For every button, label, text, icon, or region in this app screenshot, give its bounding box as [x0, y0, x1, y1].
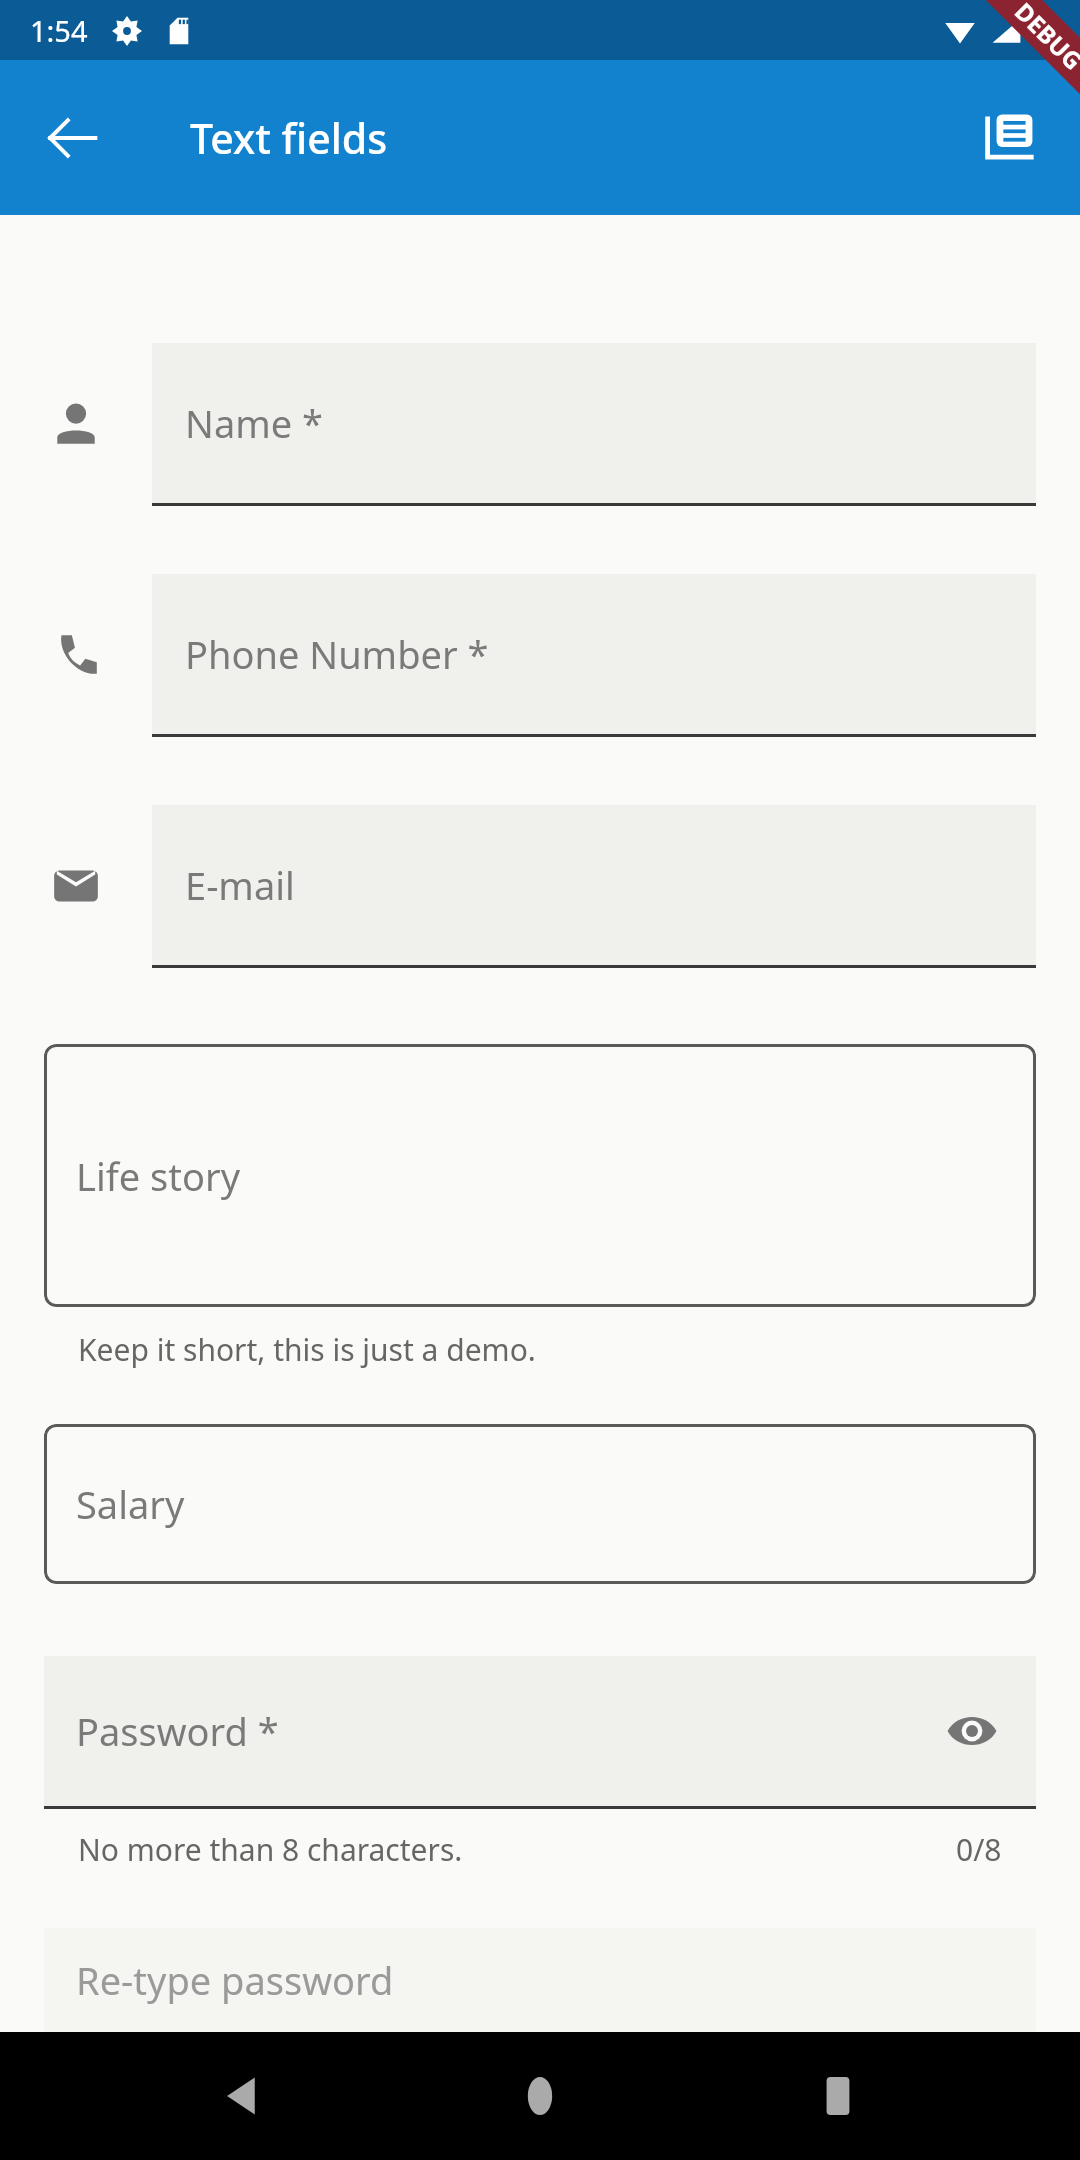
staticText: 1:54 [30, 11, 88, 50]
staticText: Salary [76, 1478, 185, 1530]
staticText: Phone Number * [185, 628, 489, 680]
staticText: Life story [76, 1150, 241, 1202]
button[interactable]: Back [24, 90, 120, 186]
button[interactable]: Salary [44, 1424, 1036, 1584]
staticText: Name * [185, 397, 323, 449]
button[interactable]: Re-type password [44, 1928, 1036, 2032]
staticText: 0/8 [956, 1829, 1002, 1870]
staticText: Password * [76, 1705, 279, 1757]
staticText: DEBUG [1008, 0, 1080, 77]
staticText: Keep it short, this is just a demo. [78, 1329, 536, 1370]
staticText: Re-type password [76, 1954, 394, 2006]
button[interactable]: Name * [0, 343, 1080, 506]
button[interactable]: Show password [932, 1691, 1012, 1771]
button[interactable]: Back [188, 2041, 298, 2151]
button[interactable]: Recent apps [783, 2041, 893, 2151]
button[interactable]: Password * [44, 1656, 1036, 1829]
button[interactable]: Home [485, 2041, 595, 2151]
button[interactable]: Reader mode [962, 90, 1058, 186]
button[interactable]: Phone Number * [0, 574, 1080, 737]
staticText: Text fields [190, 110, 388, 166]
button[interactable]: E-mail [0, 805, 1080, 968]
button[interactable]: Life story [44, 1044, 1036, 1307]
staticText: E-mail [185, 859, 295, 911]
staticText: No more than 8 characters. [78, 1829, 463, 1870]
